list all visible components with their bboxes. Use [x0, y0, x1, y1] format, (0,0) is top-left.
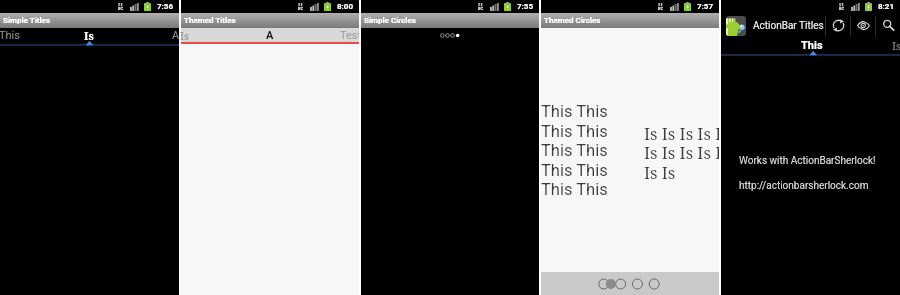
- staticText: Simple Circles: [364, 16, 416, 25]
- staticText: 7:57: [697, 2, 714, 11]
- button[interactable]: Search: [876, 13, 900, 38]
- button[interactable]: Preview: [851, 13, 875, 38]
- staticText: Is Is Is Is Is: [644, 141, 729, 163]
- button[interactable]: Is: [892, 38, 900, 53]
- staticText: Is Is: [644, 161, 676, 183]
- button[interactable]: Refresh: [826, 13, 850, 38]
- staticText: 8:21: [878, 2, 895, 11]
- button[interactable]: Test: [340, 29, 362, 42]
- button[interactable]: This: [801, 39, 823, 52]
- staticText: Is Is Is Is Is: [644, 122, 729, 144]
- staticText: This This: [541, 122, 608, 141]
- staticText: Simple Titles: [3, 16, 51, 25]
- button[interactable]: Is: [84, 28, 94, 43]
- staticText: 7:56: [157, 2, 174, 11]
- staticText: Themed Titles: [184, 16, 236, 25]
- staticText: 8:00: [337, 2, 354, 11]
- button[interactable]: http://actionbarsherlock.com: [739, 180, 869, 192]
- staticText: 7:55: [517, 2, 534, 11]
- staticText: This This: [541, 102, 608, 121]
- button[interactable]: Is: [180, 28, 189, 42]
- staticText: ActionBar Titles: [753, 20, 824, 32]
- staticText: Themed Circles: [544, 16, 601, 25]
- button[interactable]: This: [0, 29, 20, 42]
- button[interactable]: A: [266, 29, 274, 42]
- staticText: Works with ActionBarSherlock!: [739, 155, 876, 167]
- button[interactable]: A: [172, 29, 180, 42]
- staticText: This This: [541, 141, 608, 160]
- staticText: This This: [541, 180, 608, 199]
- staticText: This This: [541, 161, 608, 180]
- button[interactable]: App icon: [726, 16, 746, 36]
